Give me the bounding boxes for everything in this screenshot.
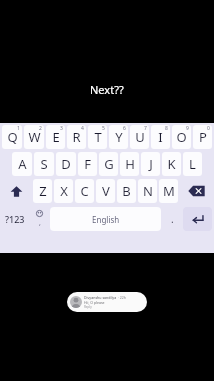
button[interactable]: S <box>34 152 54 176</box>
staticText: 2 <box>39 125 42 132</box>
button[interactable]: C <box>75 179 94 203</box>
staticText: 3 <box>60 125 63 132</box>
button[interactable]: I <box>151 125 170 149</box>
staticText: T <box>94 128 102 146</box>
staticText: 8 <box>165 125 168 132</box>
button[interactable]: V <box>96 179 115 203</box>
staticText: U <box>135 128 145 146</box>
button[interactable]: Backspace <box>179 179 213 203</box>
staticText: 6 <box>123 125 126 132</box>
button[interactable]: Enter <box>183 207 212 231</box>
staticText: D <box>61 155 71 173</box>
button[interactable]: English <box>50 207 161 231</box>
staticText: R <box>72 128 81 146</box>
button[interactable]: R <box>67 125 86 149</box>
button[interactable]: U <box>130 125 149 149</box>
staticText: L <box>189 155 196 173</box>
staticText: Z <box>39 182 47 200</box>
staticText: K <box>167 155 176 173</box>
button[interactable]: M <box>159 179 178 203</box>
staticText: P <box>199 128 207 146</box>
button[interactable]: Shift <box>1 179 32 203</box>
button[interactable]: Q <box>2 125 22 149</box>
staticText: Next?? <box>90 82 124 97</box>
staticText: H <box>125 155 135 173</box>
button[interactable]: P <box>193 125 212 149</box>
staticText: B <box>122 182 131 200</box>
staticText: V <box>102 182 110 200</box>
staticText: X <box>60 182 68 200</box>
button[interactable]: D <box>56 152 76 176</box>
staticText: 7 <box>144 125 147 132</box>
staticText: Divyanshu sandilya <box>84 295 117 300</box>
button[interactable]: ?123 <box>1 206 29 232</box>
staticText: N <box>143 182 153 200</box>
button[interactable]: Z <box>33 179 52 203</box>
staticText: 0 <box>207 125 210 132</box>
staticText: Y <box>115 128 123 146</box>
staticText: W <box>28 128 41 146</box>
staticText: . <box>171 212 174 226</box>
button[interactable]: . <box>162 206 182 232</box>
button[interactable]: Y <box>109 125 128 149</box>
button[interactable]: W <box>24 125 44 149</box>
button[interactable]: T <box>88 125 107 149</box>
staticText: E <box>52 128 60 146</box>
button[interactable]: O <box>172 125 191 149</box>
button[interactable]: E <box>46 125 65 149</box>
staticText: 9 <box>186 125 189 132</box>
button[interactable]: G <box>99 152 118 176</box>
staticText: · 22h <box>118 295 127 300</box>
button[interactable]: A <box>12 152 32 176</box>
staticText: Q <box>7 128 18 146</box>
button[interactable]: H <box>120 152 139 176</box>
button[interactable]: N <box>138 179 157 203</box>
button[interactable]: L <box>183 152 202 176</box>
button[interactable]: J <box>141 152 160 176</box>
staticText: G <box>104 155 114 173</box>
staticText: 4 <box>81 125 84 132</box>
staticText: , <box>39 218 41 228</box>
button[interactable]: X <box>54 179 73 203</box>
staticText: 5 <box>102 125 105 132</box>
staticText: English <box>92 214 120 225</box>
staticText: O <box>176 128 187 146</box>
staticText: S <box>40 155 48 173</box>
button[interactable]: B <box>117 179 136 203</box>
staticText: F <box>84 155 91 173</box>
staticText: J <box>149 155 153 173</box>
staticText: A <box>18 155 27 173</box>
button[interactable]: Divyanshu sandilya <box>67 292 147 312</box>
staticText: M <box>163 182 175 200</box>
staticText: Hii, O please <box>84 300 105 305</box>
button[interactable]: Emoji <box>29 206 49 232</box>
staticText: 1 <box>17 125 20 132</box>
staticText: I <box>158 128 163 146</box>
staticText: ?123 <box>5 213 25 225</box>
staticText: Reply <box>84 305 92 309</box>
button[interactable]: F <box>78 152 97 176</box>
staticText: C <box>80 182 89 200</box>
button[interactable]: K <box>162 152 181 176</box>
